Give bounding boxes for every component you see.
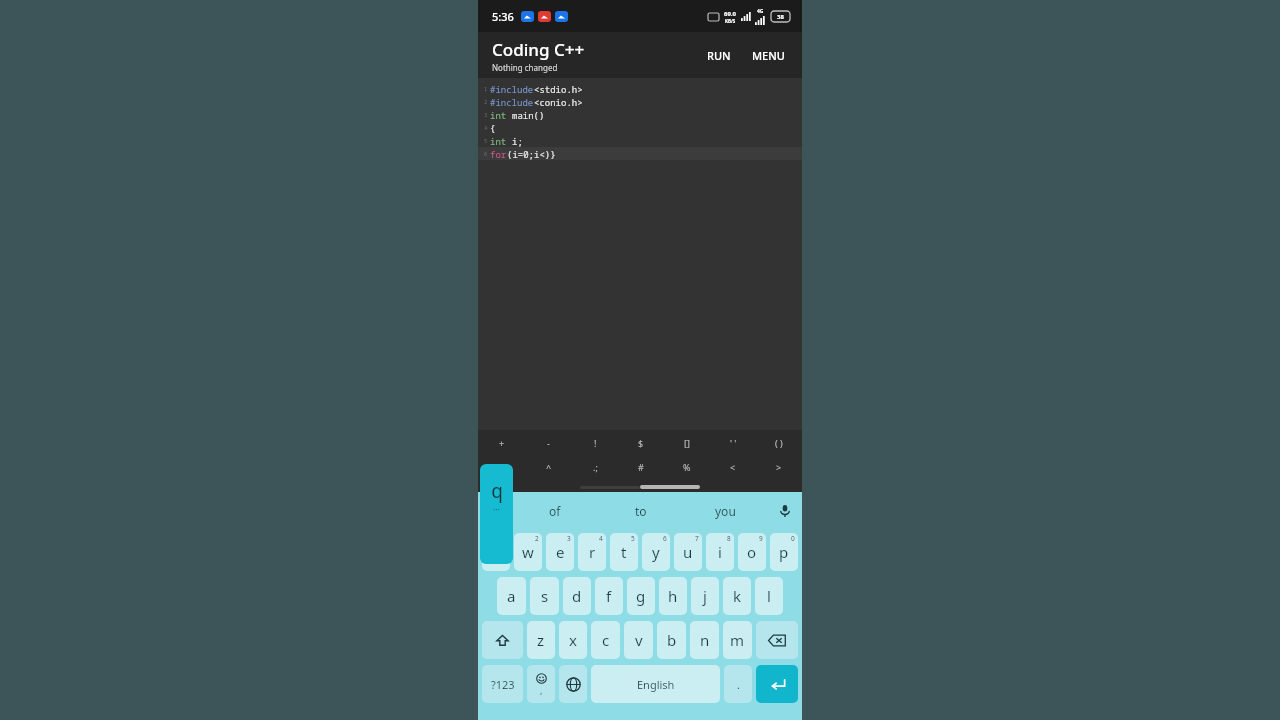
button[interactable]: MENU [745, 42, 792, 69]
button[interactable]: .; [572, 457, 618, 477]
button[interactable]: ' ' [710, 433, 756, 453]
button[interactable]: Voice input [768, 492, 802, 530]
staticText: #include [490, 96, 534, 108]
button[interactable]: ?123 [482, 665, 523, 703]
button[interactable]: o [738, 533, 766, 571]
button[interactable]: l [755, 577, 783, 615]
button[interactable]: | [478, 457, 525, 477]
staticText: f [606, 586, 612, 606]
button[interactable]: f [595, 577, 623, 615]
button[interactable]: you [683, 492, 768, 530]
button[interactable]: Change language [559, 665, 587, 703]
button[interactable]: ! [572, 433, 618, 453]
button[interactable]: v [624, 621, 653, 659]
button[interactable]: m [723, 621, 752, 659]
staticText: % [683, 461, 691, 473]
staticText: 5:36 [492, 9, 514, 24]
button[interactable]: n [690, 621, 719, 659]
staticText: main() [512, 109, 545, 121]
button[interactable]: % [664, 457, 710, 477]
staticText: 0 [791, 534, 795, 543]
button[interactable]: < [710, 457, 756, 477]
staticText: g [636, 586, 646, 606]
staticText: { [490, 122, 496, 134]
staticText: . [737, 677, 740, 692]
button[interactable]: p [770, 533, 798, 571]
staticText: RUN [707, 48, 731, 63]
button[interactable]: u [674, 533, 702, 571]
staticText: Nothing changed [492, 62, 558, 73]
staticText: 69.0 [724, 10, 736, 18]
button[interactable]: English [591, 665, 720, 703]
staticText: s [541, 586, 549, 606]
button[interactable]: Enter [756, 665, 798, 703]
button[interactable]: of [512, 492, 598, 530]
button[interactable]: i [706, 533, 734, 571]
button[interactable]: s [530, 577, 559, 615]
staticText: 4 [599, 534, 603, 543]
button[interactable]: e [546, 533, 574, 571]
button[interactable]: w [514, 533, 542, 571]
staticText: $ [638, 437, 644, 449]
button[interactable]: t [610, 533, 638, 571]
staticText: d [572, 586, 582, 606]
button[interactable]: to [598, 492, 683, 530]
staticText: ( ) [775, 437, 783, 449]
staticText: n [700, 630, 710, 650]
staticText: ^ [546, 461, 552, 473]
button[interactable]: # [618, 457, 664, 477]
button[interactable]: d [563, 577, 591, 615]
button[interactable]: + [478, 433, 525, 453]
button[interactable]: ^ [525, 457, 572, 477]
staticText: k [733, 586, 742, 606]
staticText: Coding C++ [492, 38, 585, 61]
button[interactable]: r [578, 533, 606, 571]
button[interactable]: - [525, 433, 572, 453]
button[interactable]: k [723, 577, 751, 615]
button[interactable]: . [724, 665, 752, 703]
staticText: (i=0;i<)} [507, 148, 556, 160]
button[interactable]: ( ) [756, 433, 802, 453]
staticText: h [668, 586, 678, 606]
staticText: #include [490, 83, 534, 95]
staticText: <stdio.h> [534, 83, 583, 95]
button[interactable]: Shift [482, 621, 523, 659]
staticText: you [715, 503, 736, 519]
staticText: q [491, 478, 503, 504]
staticText: ! [594, 437, 597, 449]
button[interactable]: a [497, 577, 526, 615]
button[interactable]: [] [664, 433, 710, 453]
button[interactable]: Backspace [756, 621, 798, 659]
button[interactable]: c [591, 621, 620, 659]
button[interactable]: j [691, 577, 719, 615]
button[interactable]: RUN [700, 42, 738, 69]
button[interactable]: b [657, 621, 686, 659]
button[interactable]: q [482, 533, 510, 571]
button[interactable]: Emoji [527, 665, 555, 703]
button[interactable]: $ [618, 433, 664, 453]
staticText: for [490, 148, 507, 160]
staticText: int [490, 135, 512, 147]
staticText: x [569, 630, 577, 650]
staticText: , [540, 684, 543, 696]
staticText: 2 [484, 98, 488, 105]
staticText: b [667, 630, 677, 650]
button[interactable]: g [627, 577, 655, 615]
staticText: of [549, 503, 561, 519]
button[interactable]: > [756, 457, 802, 477]
staticText: p [779, 542, 789, 562]
button[interactable]: x [559, 621, 587, 659]
button[interactable]: y [642, 533, 670, 571]
button[interactable]: h [659, 577, 687, 615]
staticText: w [522, 542, 534, 562]
staticText: e [556, 542, 565, 562]
button[interactable]: q key pressed [480, 464, 513, 564]
staticText: < [730, 461, 736, 473]
staticText: a [507, 586, 516, 606]
button[interactable]: z [527, 621, 555, 659]
staticText: u [683, 542, 693, 562]
staticText: 3 [484, 111, 488, 118]
staticText: j [703, 586, 707, 606]
staticText: > [776, 461, 782, 473]
